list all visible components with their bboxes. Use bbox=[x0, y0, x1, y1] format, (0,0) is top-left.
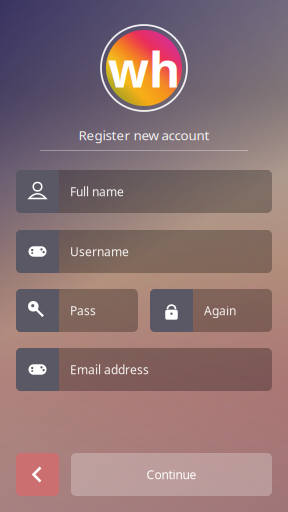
staticText: wh bbox=[108, 37, 180, 101]
button[interactable]: Continue bbox=[71, 453, 272, 496]
staticText: Email address bbox=[70, 361, 149, 377]
button[interactable]: Pass bbox=[16, 289, 138, 332]
button[interactable]: Email address bbox=[16, 348, 272, 391]
staticText: Full name bbox=[70, 183, 124, 199]
button[interactable]: Back bbox=[16, 453, 59, 496]
button[interactable]: Username bbox=[16, 230, 272, 273]
button[interactable]: Full name bbox=[16, 170, 272, 213]
button[interactable]: Again bbox=[150, 289, 272, 332]
staticText: Continue bbox=[146, 466, 196, 482]
staticText: Username bbox=[70, 243, 129, 259]
staticText: Register new account bbox=[78, 126, 209, 144]
staticText: Again bbox=[204, 302, 236, 318]
staticText: Pass bbox=[70, 302, 96, 318]
